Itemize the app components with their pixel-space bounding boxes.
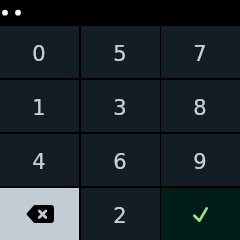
button[interactable]: 6 (81, 134, 160, 186)
staticText: 5 (113, 42, 127, 66)
staticText: 7 (193, 42, 207, 66)
staticText: 0 (32, 42, 46, 66)
button[interactable]: 4 (0, 134, 79, 186)
button[interactable]: 7 (161, 26, 240, 78)
staticText: 9 (193, 150, 207, 174)
button[interactable]: 9 (161, 134, 240, 186)
staticText: 2 (113, 204, 127, 228)
button[interactable]: 8 (161, 80, 240, 132)
button[interactable]: 2 (81, 188, 160, 240)
staticText: 6 (113, 150, 127, 174)
button[interactable]: Confirm (161, 188, 240, 240)
staticText: 4 (32, 150, 46, 174)
button[interactable]: 1 (0, 80, 79, 132)
button[interactable]: 5 (81, 26, 160, 78)
staticText: 1 (32, 96, 46, 120)
staticText: 3 (113, 96, 127, 120)
button[interactable]: 3 (81, 80, 160, 132)
button[interactable]: Backspace (0, 188, 79, 240)
button[interactable]: 0 (0, 26, 79, 78)
staticText: 8 (193, 96, 207, 120)
